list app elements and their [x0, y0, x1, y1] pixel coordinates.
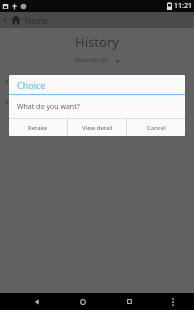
staticText: View detail [82, 124, 113, 132]
button[interactable]: Recent apps [118, 293, 140, 310]
button[interactable]: Cancel [127, 119, 185, 136]
other: Back [2, 17, 8, 23]
button[interactable]: Back [0, 12, 194, 28]
other: Open list [115, 58, 119, 62]
button[interactable]: Back [26, 293, 48, 310]
button[interactable]: 03-17 11:20 - Incomplete [0, 97, 194, 107]
staticText: Choice [17, 79, 46, 91]
button[interactable]: Retake [9, 119, 67, 136]
button[interactable]: View detail [68, 119, 126, 136]
staticText: Cancel [147, 124, 166, 132]
button[interactable]: Bible for All [72, 55, 122, 65]
staticText: 11:21 [174, 1, 192, 11]
button[interactable]: More options [164, 293, 182, 310]
staticText: What do you want? [17, 102, 80, 112]
staticText: Retake [28, 124, 48, 132]
staticText: Home [25, 15, 48, 26]
button[interactable]: 03-17 11:20 - Incomplete [0, 77, 194, 87]
staticText: Bible for All [75, 56, 108, 64]
staticText: 03-17 11:20 - Incomplete [5, 98, 75, 106]
staticText: History [0, 33, 194, 51]
button[interactable]: Home [72, 293, 94, 310]
staticText: 03-17 11:20 - Incomplete [5, 78, 75, 86]
